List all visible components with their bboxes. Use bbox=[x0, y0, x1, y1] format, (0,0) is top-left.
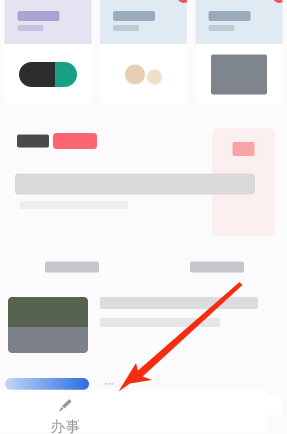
staticText: 办事 bbox=[50, 417, 80, 434]
button[interactable]: 办事 bbox=[31, 390, 100, 434]
button[interactable]: Service card bbox=[195, 0, 282, 105]
staticText: ··· bbox=[104, 376, 113, 392]
button[interactable]: Headline bbox=[17, 133, 107, 149]
button[interactable]: Service card bbox=[100, 0, 187, 105]
button[interactable]: Progress bbox=[5, 378, 89, 390]
button[interactable]: Service card bbox=[4, 0, 91, 105]
button[interactable]: Article bbox=[0, 293, 287, 357]
button[interactable]: Promotion bbox=[212, 128, 275, 236]
